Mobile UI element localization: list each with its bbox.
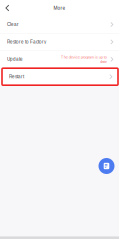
staticText: The device program is up to date xyxy=(60,55,106,64)
staticText: More xyxy=(53,5,65,11)
staticText: Clear xyxy=(7,22,19,27)
button[interactable]: Restore to Factory xyxy=(0,33,119,50)
staticText: Update xyxy=(7,57,23,62)
staticText: Restore to Factory xyxy=(7,39,46,44)
staticText: Restart xyxy=(9,74,24,79)
button[interactable]: Documents xyxy=(98,158,114,174)
button[interactable]: Back xyxy=(0,0,17,16)
button[interactable]: Restart xyxy=(0,68,119,85)
button[interactable]: Clear xyxy=(0,16,119,33)
button[interactable]: Update xyxy=(0,51,119,68)
